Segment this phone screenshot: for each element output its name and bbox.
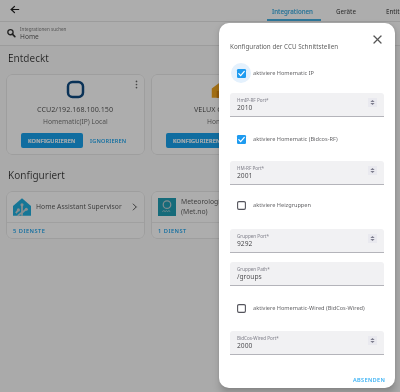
staticText: KONFIGURIEREN xyxy=(28,137,76,145)
staticText: Konfiguriert xyxy=(8,168,65,182)
button[interactable]: IGNORIEREN xyxy=(83,133,134,148)
staticText: 1 DIENST xyxy=(158,227,187,235)
staticText: Gruppen Port* xyxy=(237,233,270,239)
button[interactable]: 5 DIENSTE xyxy=(6,223,145,239)
button[interactable]: aktiviere Homematic (Bidcos-RF) xyxy=(231,129,338,149)
button[interactable]: Gruppen Port* xyxy=(230,229,384,253)
staticText: Geräte xyxy=(336,7,357,15)
button[interactable]: Adjust value xyxy=(368,234,377,243)
staticText: Integrationen suchen xyxy=(20,26,67,32)
staticText: Meteorologisk institutt xyxy=(181,197,254,206)
staticText: HmIP-RF Port* xyxy=(237,97,269,103)
button[interactable]: KONFIGURIEREN xyxy=(21,133,83,148)
staticText: ABSENDEN xyxy=(353,376,386,384)
staticText: 2010 xyxy=(237,103,253,112)
staticText: VELUX Gateway xyxy=(194,104,247,114)
staticText: 2000 xyxy=(237,341,253,350)
staticText: 5 DIENSTE xyxy=(13,227,46,235)
button[interactable]: Integrationen xyxy=(265,0,319,21)
button[interactable]: More options xyxy=(130,78,143,91)
staticText: Home Assistant Supervisor xyxy=(36,202,122,211)
staticText: CCU2/192.168.100.150 xyxy=(37,104,114,114)
button[interactable]: Gruppen Path* xyxy=(230,262,384,286)
staticText: Homematic(IP) Local xyxy=(43,117,108,126)
staticText: HomeKit xyxy=(207,117,235,126)
staticText: Entitäten xyxy=(386,7,400,15)
staticText: Gruppen Path* xyxy=(237,266,270,272)
button[interactable]: KONFIGURIEREN xyxy=(166,133,228,148)
staticText: aktiviere Homematic (Bidcos-RF) xyxy=(253,135,338,143)
button[interactable]: Home Assistant Supervisor xyxy=(6,191,145,222)
button[interactable]: Adjust value xyxy=(368,98,377,107)
staticText: Entdeckt xyxy=(8,51,49,65)
button[interactable]: BidCos-Wired Port* xyxy=(230,331,384,355)
button[interactable]: 1 DIENST xyxy=(151,223,290,239)
button[interactable]: Adjust value xyxy=(368,166,377,175)
button[interactable]: Meteorologisk institutt xyxy=(151,191,290,222)
button[interactable]: ABSENDEN xyxy=(348,371,391,388)
button[interactable]: Back xyxy=(4,0,26,20)
button[interactable]: aktiviere Heizgruppen xyxy=(231,195,311,215)
staticText: (Met.no) xyxy=(181,207,208,216)
button[interactable]: HmIP-RF Port* xyxy=(230,93,384,117)
button[interactable]: Entitäten xyxy=(373,0,400,21)
button[interactable]: Close xyxy=(366,28,388,50)
staticText: aktiviere Heizgruppen xyxy=(253,201,311,209)
staticText: aktiviere Homematic IP xyxy=(253,69,314,77)
staticText: /groups xyxy=(237,272,262,281)
button[interactable]: VELUX Gateway xyxy=(151,74,290,155)
button[interactable]: Adjust value xyxy=(368,336,377,345)
staticText: BidCos-Wired Port* xyxy=(237,335,279,341)
staticText: aktiviere Homematic-Wired (BidCos-Wired) xyxy=(253,304,365,312)
staticText: IGNORIEREN xyxy=(90,137,127,145)
staticText: Konfiguration der CCU Schnittstellen xyxy=(230,42,339,51)
button[interactable]: HM-RF Port* xyxy=(230,161,384,185)
staticText: Home xyxy=(20,32,39,41)
button[interactable]: CCU2/192.168.100.150 xyxy=(6,74,145,155)
button[interactable]: aktiviere Homematic IP xyxy=(231,63,314,83)
staticText: 9292 xyxy=(237,239,253,248)
staticText: HM-RF Port* xyxy=(237,165,265,171)
button[interactable]: aktiviere Homematic-Wired (BidCos-Wired) xyxy=(231,298,365,318)
staticText: Integrationen xyxy=(272,7,313,15)
staticText: KONFIGURIEREN xyxy=(173,137,221,145)
button[interactable]: Geräte xyxy=(319,0,373,21)
staticText: 2001 xyxy=(237,171,253,180)
